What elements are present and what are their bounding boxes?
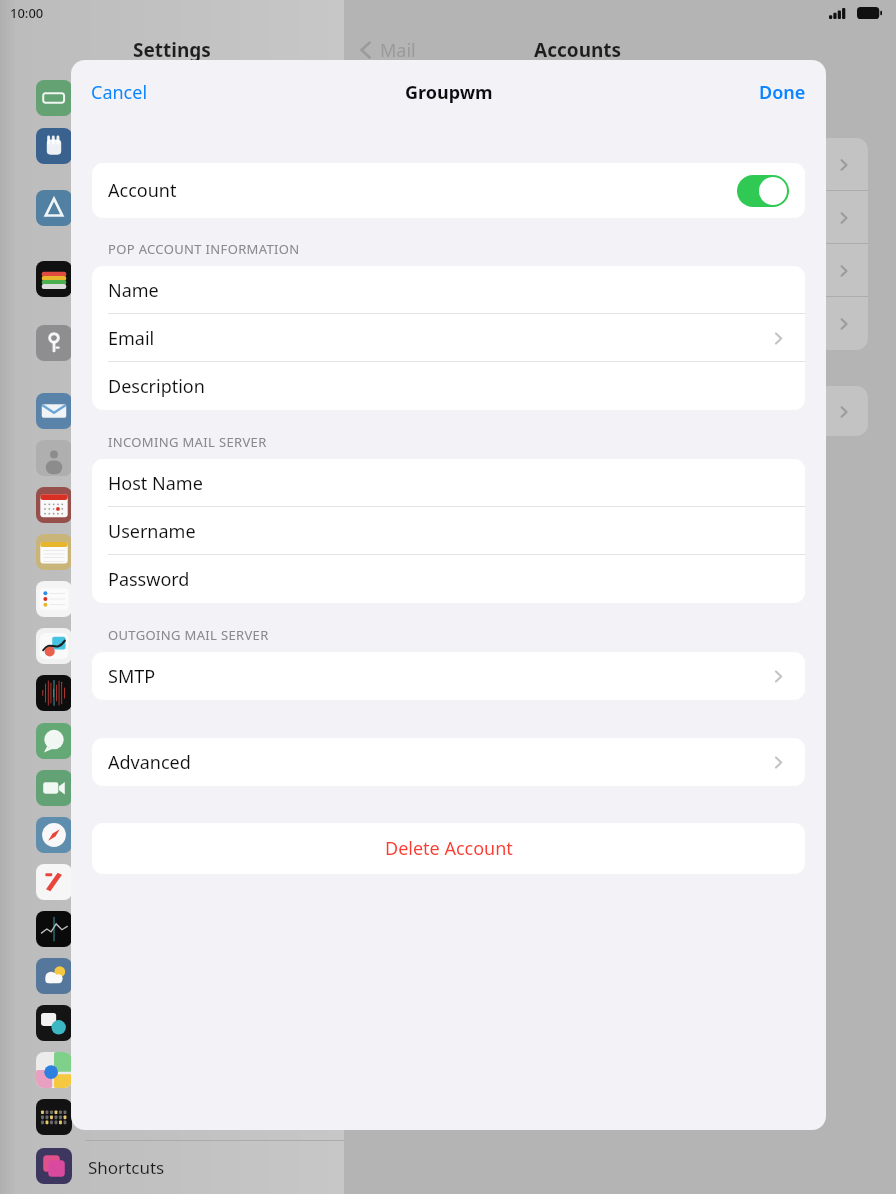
staticText: Fetch [784, 400, 828, 423]
staticText: Username [108, 519, 196, 544]
staticText: Mail [380, 38, 416, 63]
staticText: POP ACCOUNT INFORMATION [108, 240, 300, 258]
staticText: Account [108, 178, 177, 203]
staticText: Delete Account [385, 836, 513, 861]
staticText: Host Name [108, 471, 203, 496]
button[interactable]: Password [92, 555, 805, 603]
button[interactable]: Account toggle, on [737, 175, 789, 207]
staticText: 10:00 [10, 4, 44, 22]
staticText: Name [108, 278, 159, 303]
button[interactable]: Done [745, 72, 820, 113]
staticText: Email [108, 326, 155, 351]
staticText: Settings [133, 37, 211, 63]
staticText: Cancel [91, 80, 148, 105]
button[interactable]: Host Name [92, 459, 805, 507]
staticText: Done [759, 80, 806, 105]
button[interactable]: Account [92, 163, 805, 218]
button[interactable]: Delete Account [92, 823, 805, 874]
button[interactable]: Username [92, 507, 805, 555]
staticText: INCOMING MAIL SERVER [108, 433, 267, 451]
button[interactable]: Email [92, 314, 805, 362]
button[interactable]: Advanced [92, 738, 805, 786]
staticText: SMTP [108, 664, 156, 689]
button[interactable]: SMTP [92, 652, 805, 700]
staticText: Groupwm [405, 80, 493, 105]
button[interactable]: Description [92, 362, 805, 410]
staticText: Accounts [534, 37, 622, 63]
button[interactable]: Cancel [77, 72, 162, 113]
button[interactable]: Name [92, 266, 805, 314]
staticText: Advanced [108, 750, 191, 775]
staticText: OUTGOING MAIL SERVER [108, 626, 269, 644]
staticText: Shortcuts [88, 1156, 165, 1179]
staticText: Description [108, 374, 205, 399]
staticText: Password [108, 567, 190, 592]
